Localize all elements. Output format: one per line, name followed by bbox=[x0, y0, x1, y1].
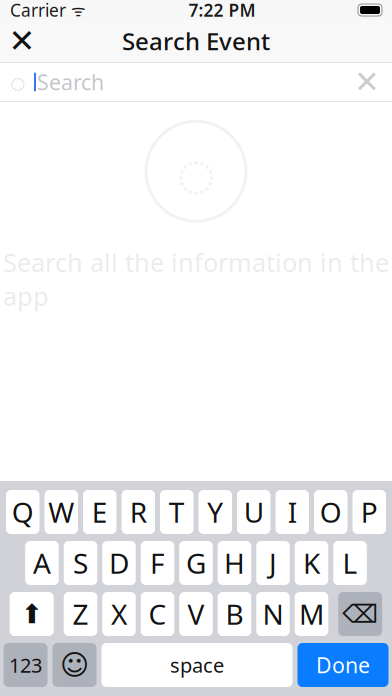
staticText: A bbox=[33, 544, 51, 582]
button[interactable]: U bbox=[237, 490, 270, 534]
staticText: C bbox=[148, 595, 166, 633]
button[interactable]: M bbox=[295, 592, 328, 636]
staticText: F bbox=[150, 544, 165, 582]
button[interactable]: Shift bbox=[10, 592, 54, 636]
staticText: Search bbox=[37, 68, 104, 96]
staticText: J bbox=[269, 544, 277, 582]
staticText: ☺ bbox=[60, 649, 89, 681]
button[interactable]: E bbox=[83, 490, 116, 534]
button[interactable]: G bbox=[179, 541, 213, 585]
button[interactable]: Q bbox=[6, 490, 39, 534]
staticText: O bbox=[320, 493, 342, 531]
staticText: Search Event bbox=[122, 25, 270, 57]
button[interactable]: J bbox=[256, 541, 290, 585]
staticText: 123 bbox=[9, 652, 42, 678]
button[interactable]: Emoji bbox=[52, 643, 96, 687]
button[interactable]: Z bbox=[64, 592, 97, 636]
staticText: Y bbox=[207, 493, 223, 531]
staticText: ✕ bbox=[354, 65, 380, 99]
button[interactable]: B bbox=[218, 592, 251, 636]
staticText: ⬆ bbox=[21, 599, 43, 629]
staticText: M bbox=[299, 595, 324, 633]
staticText: E bbox=[92, 493, 108, 531]
button[interactable]: Done bbox=[297, 643, 388, 687]
staticText: U bbox=[244, 493, 264, 531]
button[interactable]: Delete bbox=[338, 592, 382, 636]
button[interactable]: F bbox=[141, 541, 174, 585]
staticText: Search all the information in the app bbox=[3, 245, 389, 313]
button[interactable]: I bbox=[275, 490, 309, 534]
button[interactable]: C bbox=[141, 592, 174, 636]
staticText: X bbox=[111, 595, 127, 633]
button[interactable]: Y bbox=[198, 490, 232, 534]
button[interactable]: H bbox=[218, 541, 251, 585]
staticText: ◌ bbox=[10, 64, 26, 100]
staticText: L bbox=[342, 544, 357, 582]
staticText: R bbox=[130, 493, 147, 531]
button[interactable]: K bbox=[295, 541, 328, 585]
button[interactable]: T bbox=[160, 490, 193, 534]
staticText: N bbox=[262, 595, 283, 633]
button[interactable]: R bbox=[121, 490, 155, 534]
staticText: B bbox=[225, 595, 243, 633]
staticText: 7:22 PM bbox=[188, 0, 255, 21]
staticText: Done bbox=[316, 651, 370, 679]
staticText: ᯤ bbox=[71, 0, 86, 21]
staticText: ✕ bbox=[8, 23, 35, 59]
button[interactable]: N bbox=[256, 592, 290, 636]
staticText: space bbox=[170, 652, 224, 678]
staticText: S bbox=[73, 544, 88, 582]
button[interactable]: O bbox=[314, 490, 347, 534]
button[interactable]: W bbox=[44, 490, 78, 534]
staticText: K bbox=[303, 544, 320, 582]
button[interactable]: D bbox=[102, 541, 136, 585]
staticText: H bbox=[224, 544, 245, 582]
staticText: G bbox=[186, 544, 206, 582]
staticText: ⌫ bbox=[342, 600, 378, 628]
button[interactable]: S bbox=[64, 541, 97, 585]
staticText: I bbox=[288, 493, 297, 531]
button[interactable]: Close bbox=[0, 20, 44, 62]
staticText: T bbox=[169, 493, 185, 531]
staticText: Z bbox=[72, 595, 88, 633]
button[interactable]: L bbox=[333, 541, 367, 585]
staticText: P bbox=[361, 493, 378, 531]
staticText: D bbox=[109, 544, 129, 582]
button[interactable]: A bbox=[25, 541, 59, 585]
staticText: W bbox=[48, 493, 74, 531]
button[interactable]: X bbox=[102, 592, 136, 636]
button[interactable]: V bbox=[179, 592, 213, 636]
button[interactable]: P bbox=[352, 490, 386, 534]
button[interactable]: space bbox=[101, 643, 292, 687]
staticText: Q bbox=[12, 493, 34, 531]
staticText: V bbox=[187, 595, 204, 633]
staticText: Carrier bbox=[10, 0, 66, 21]
button[interactable]: ◌ bbox=[0, 62, 392, 102]
button[interactable]: 123 bbox=[3, 643, 47, 687]
